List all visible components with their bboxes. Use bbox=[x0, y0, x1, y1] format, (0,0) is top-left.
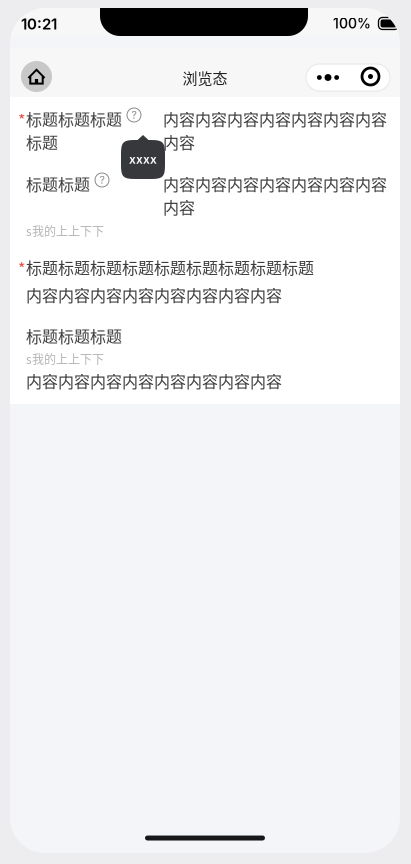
staticText: ? bbox=[99, 174, 104, 186]
staticText: 标题标题 bbox=[26, 172, 90, 195]
button[interactable]: * bbox=[18, 107, 392, 163]
button[interactable]: 更多 bbox=[306, 64, 390, 91]
staticText: * bbox=[18, 108, 25, 131]
staticText: 100% bbox=[333, 15, 371, 32]
button[interactable]: * bbox=[18, 172, 392, 222]
staticText: ? bbox=[131, 109, 136, 121]
staticText: * bbox=[18, 256, 25, 280]
staticText: 标题标题标题 bbox=[26, 324, 122, 347]
staticText: 内容内容内容内容内容内容内容内容 bbox=[26, 283, 282, 306]
staticText: xxxx bbox=[129, 152, 157, 167]
button[interactable]: 首页 bbox=[21, 61, 52, 92]
staticText: 标题标题标题标题标题标题标题标题标题 bbox=[26, 255, 314, 279]
staticText: s我的上上下下 bbox=[26, 222, 104, 239]
staticText: 标题标题标题标题 bbox=[26, 107, 122, 153]
staticText: 浏览态 bbox=[182, 67, 227, 88]
staticText: 内容内容内容内容内容内容内容内容 bbox=[163, 107, 387, 153]
staticText: 内容内容内容内容内容内容内容内容 bbox=[26, 369, 282, 392]
staticText: 内容内容内容内容内容内容内容内容 bbox=[163, 172, 387, 218]
staticText: s我的上上下下 bbox=[26, 350, 104, 367]
staticText: 10:21 bbox=[21, 15, 57, 33]
